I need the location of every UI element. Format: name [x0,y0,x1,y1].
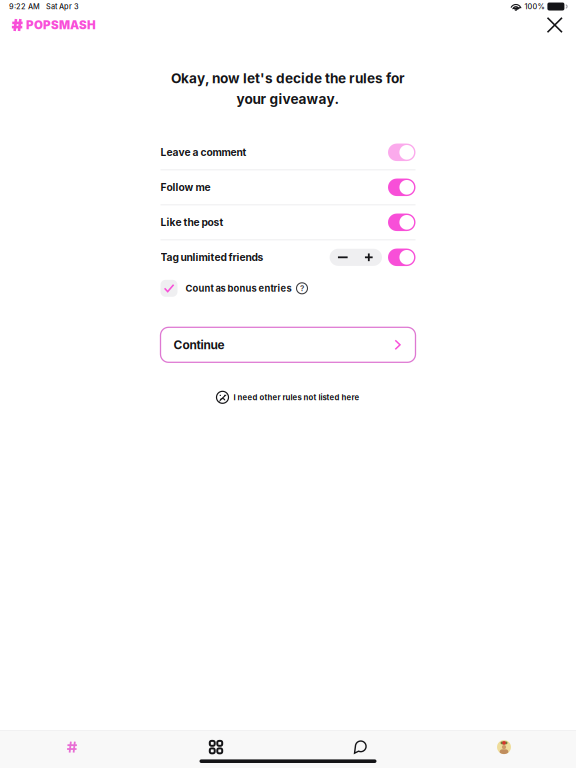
staticText: Tag unlimited friends [160,251,263,263]
button[interactable]: Profile [432,737,576,758]
staticText: ? [300,283,304,293]
button[interactable]: Like the post [160,205,415,239]
button[interactable]: Leave a comment [160,135,415,169]
staticText: 100% [524,2,544,11]
button[interactable]: Increase [356,249,382,266]
button[interactable]: Decrease [330,249,356,266]
staticText: Count as bonus entries [185,283,291,294]
button[interactable]: Hashtags [0,737,144,758]
staticText: POPSMASH [26,18,96,32]
button[interactable]: Discover [144,737,288,758]
staticText: Continue [173,338,224,352]
staticText: Follow me [160,181,210,193]
button[interactable]: POPSMASH [0,13,104,37]
staticText: your giveaway. [236,91,339,107]
staticText: I need other rules not listed here [233,393,359,402]
staticText: Okay, now let's decide the rules for [171,70,405,86]
button[interactable]: Messages [288,737,432,758]
button[interactable]: Close [537,13,576,37]
button[interactable]: Continue [160,327,415,362]
button[interactable]: Follow me [160,170,415,204]
button[interactable]: Tag unlimited friends [160,240,415,274]
button[interactable]: I need other rules not listed here [216,386,359,408]
button[interactable]: Count as bonus entries [160,274,415,302]
staticText: Like the post [160,216,223,228]
staticText: Sat Apr 3 [46,2,79,11]
staticText: Leave a comment [160,146,246,158]
staticText: 9:22 AM [9,2,40,11]
